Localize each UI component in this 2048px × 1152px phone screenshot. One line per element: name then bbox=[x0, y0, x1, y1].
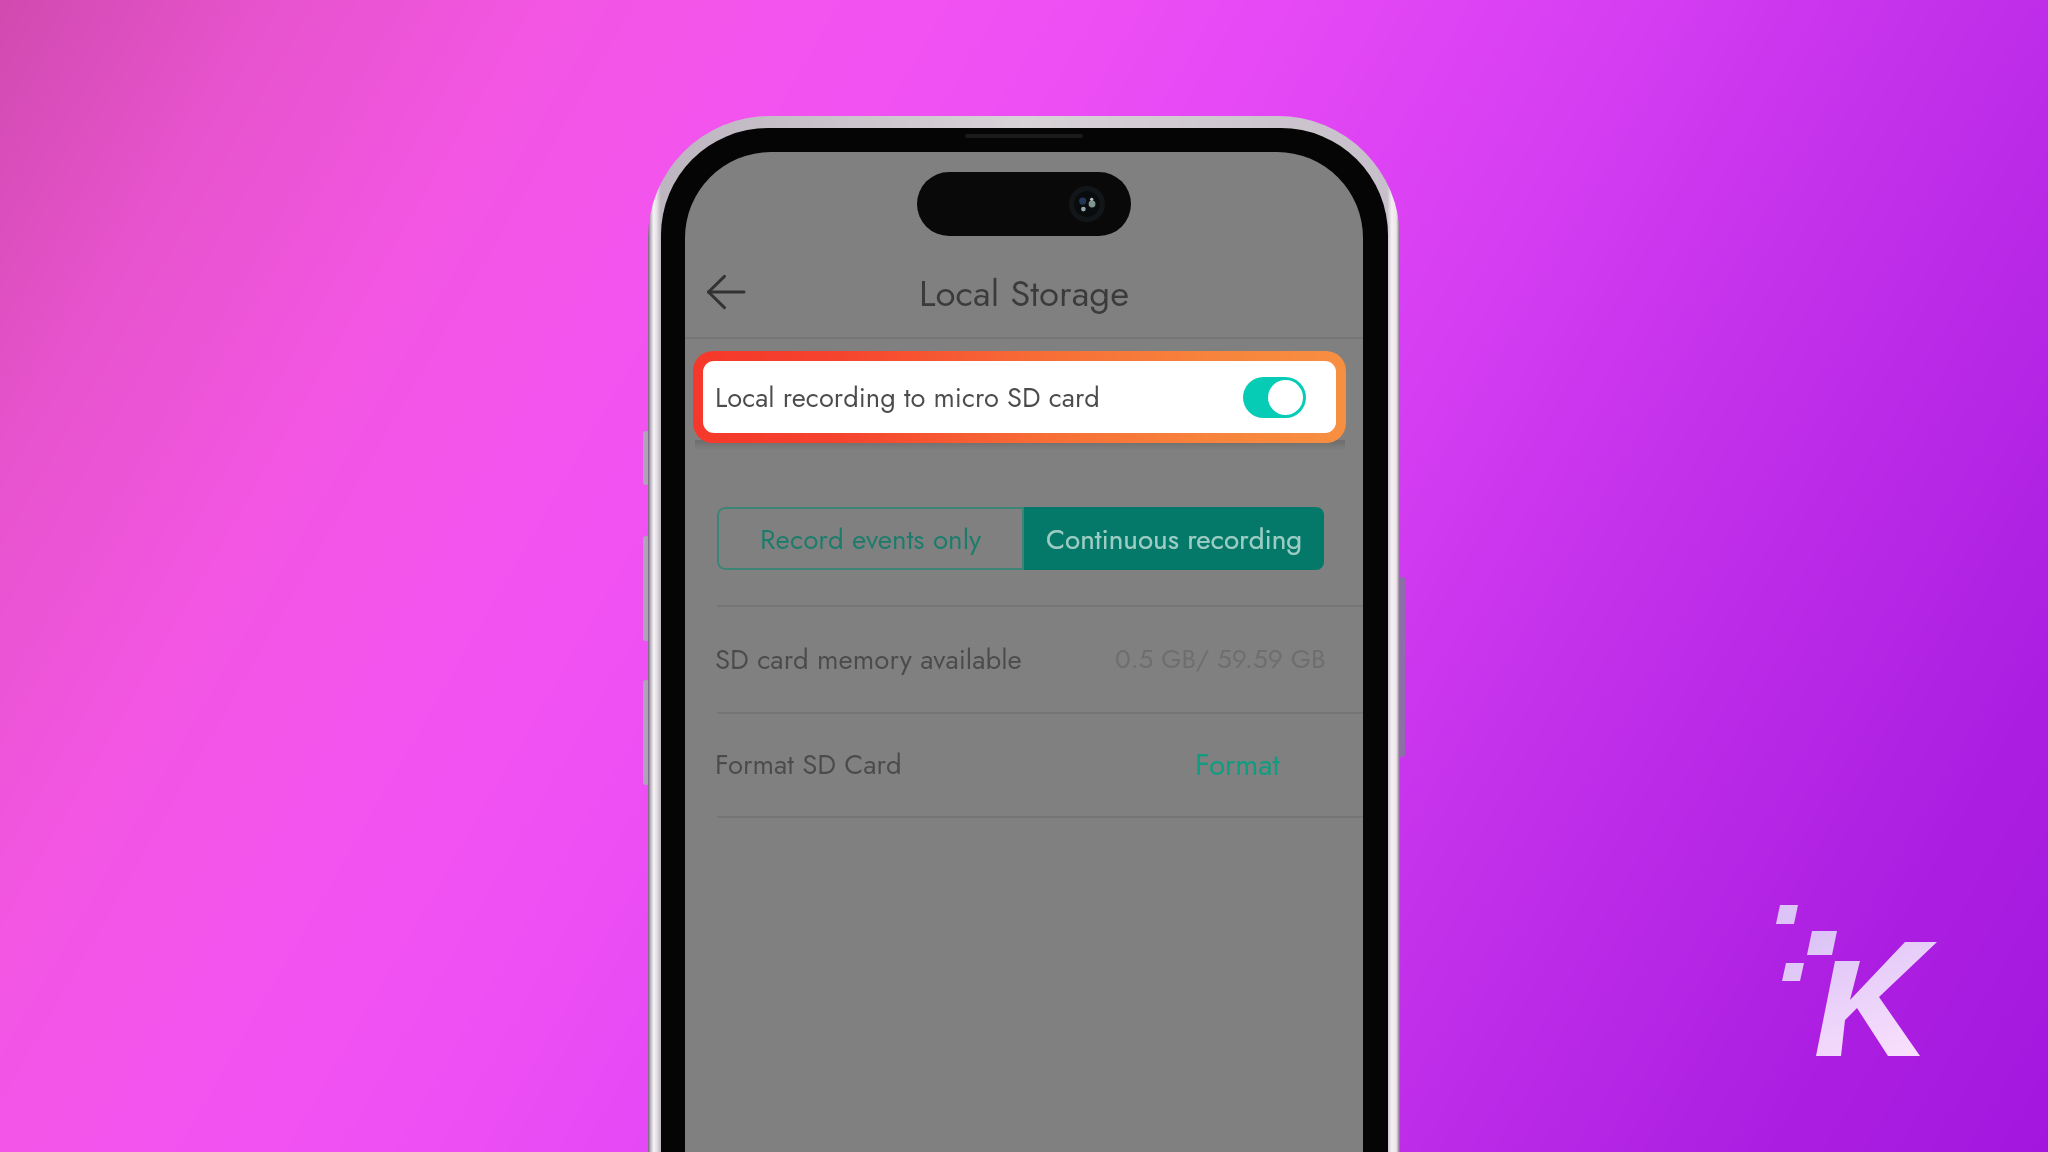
staticText: Local recording to micro SD card bbox=[715, 378, 1100, 417]
staticText: Continuous recording bbox=[1046, 519, 1303, 559]
staticText: 0.5 GB/ 59.59 GB bbox=[1115, 640, 1326, 678]
button[interactable]: SD card memory available bbox=[685, 605, 1363, 712]
staticText: Format bbox=[1195, 743, 1280, 786]
button[interactable]: Format SD Card bbox=[685, 712, 1363, 816]
button[interactable]: Toggle local recording bbox=[1243, 377, 1306, 418]
staticText: Local Storage bbox=[919, 267, 1130, 320]
button[interactable]: Local recording to micro SD card bbox=[703, 361, 1336, 433]
button[interactable]: Continuous recording bbox=[1024, 507, 1324, 570]
staticText: Format SD Card bbox=[715, 744, 902, 784]
staticText: Record events only bbox=[760, 519, 982, 559]
staticText: SD card memory available bbox=[715, 639, 1022, 679]
button[interactable]: Back bbox=[696, 262, 756, 322]
other: KnowTechie logo bbox=[1770, 898, 1942, 1060]
button[interactable]: Record events only bbox=[717, 507, 1024, 570]
